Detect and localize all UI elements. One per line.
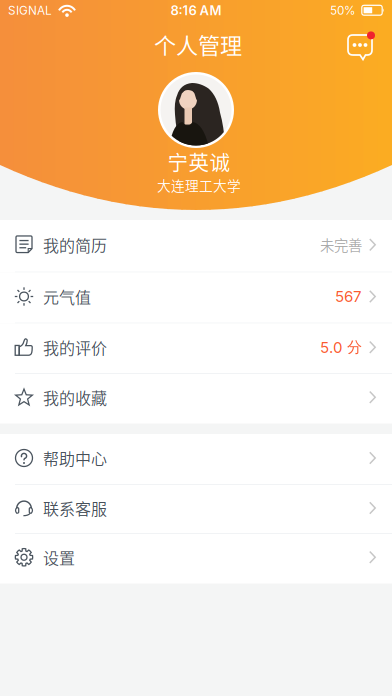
staticText: 设置 (43, 546, 75, 569)
button[interactable]: 联系客服 (0, 485, 392, 534)
staticText: 50% (330, 3, 356, 18)
staticText: 567 (335, 287, 362, 306)
staticText: 联系客服 (43, 496, 107, 520)
staticText: 帮助中心 (43, 446, 107, 470)
button[interactable]: 帮助中心 (0, 434, 392, 485)
button[interactable]: 设置 (0, 534, 392, 583)
staticText: 我的收藏 (43, 386, 107, 409)
staticText: 个人管理 (154, 28, 242, 60)
button[interactable]: 元气值 (0, 272, 392, 323)
staticText: SIGNAL (8, 3, 52, 18)
staticText: 大连理工大学 (157, 175, 241, 195)
button[interactable]: 我的评价 (0, 323, 392, 374)
staticText: 5.0 分 (320, 338, 362, 357)
staticText: 宁英诚 (167, 148, 230, 175)
staticText: 8:16 AM (170, 3, 221, 18)
staticText: 我的简历 (43, 233, 107, 256)
button[interactable]: Messages (347, 28, 392, 60)
staticText: 元气值 (43, 285, 91, 308)
button[interactable]: 我的简历 (0, 220, 392, 272)
button[interactable]: 我的收藏 (0, 374, 392, 423)
staticText: 我的评价 (43, 336, 107, 359)
staticText: 未完善 (320, 234, 362, 255)
